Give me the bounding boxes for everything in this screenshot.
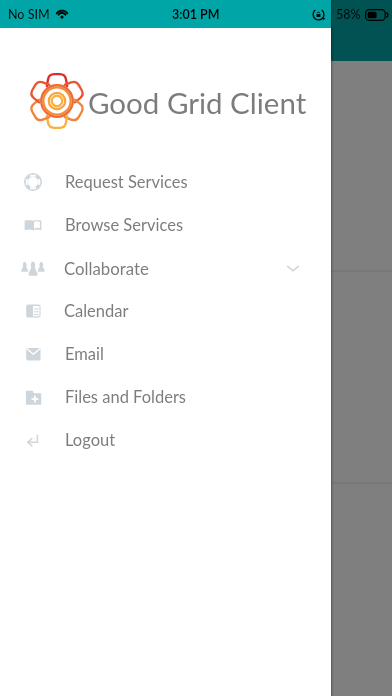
button[interactable]: Request Services [0,160,331,203]
staticText: Calendar [64,301,129,321]
button[interactable]: Email [0,332,331,375]
staticText: Files and Folders [65,387,187,407]
button[interactable]: Browse Services [0,203,331,246]
staticText: Browse Services [65,215,184,235]
staticText: No SIM [8,7,50,22]
staticText: 3:01 PM [172,7,220,22]
button[interactable]: Files and Folders [0,375,331,418]
staticText: Collaborate [64,258,149,278]
staticText: Request Services [65,172,188,192]
staticText: Good Grid Client [88,85,307,120]
button[interactable]: Calendar [0,289,331,332]
staticText: Logout [65,430,116,450]
button[interactable]: Logout [0,418,331,461]
staticText: Email [65,344,104,364]
staticText: 58% [336,7,361,22]
button[interactable]: Collaborate [0,246,331,289]
